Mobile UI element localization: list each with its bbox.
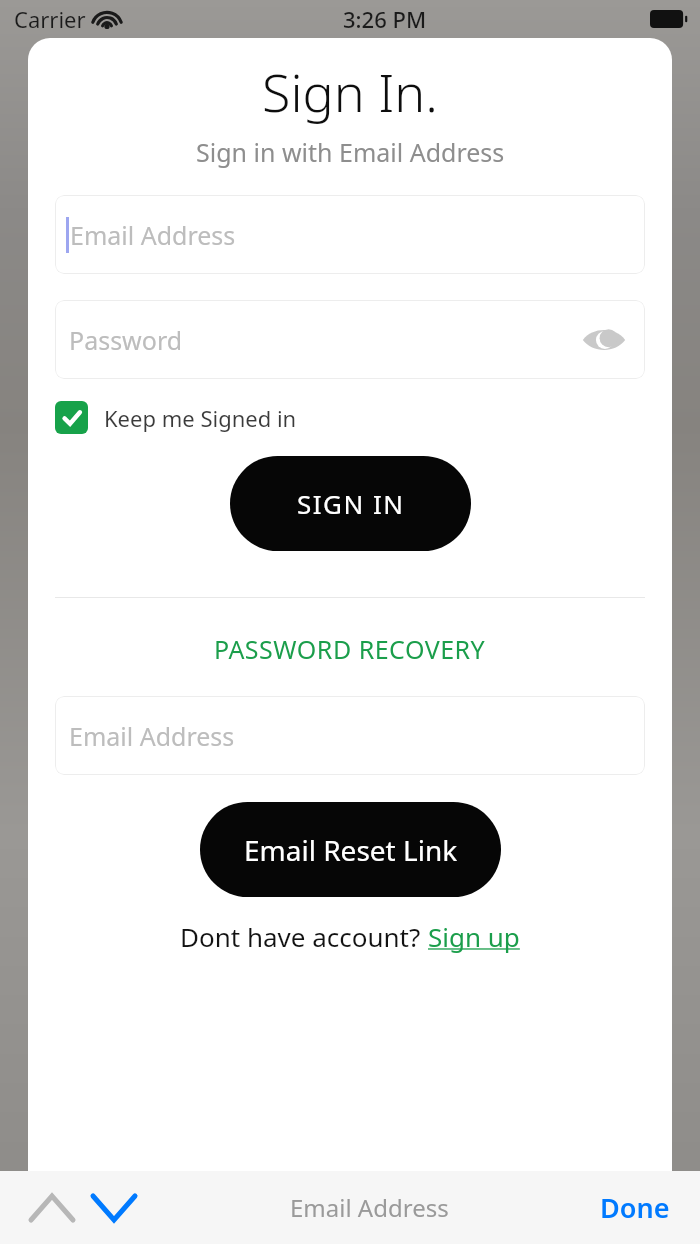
staticText: Email Address xyxy=(70,218,236,252)
staticText: 3:26 PM xyxy=(343,4,427,34)
staticText: Sign In. xyxy=(262,56,438,127)
button[interactable]: Email Reset Link xyxy=(200,802,501,897)
button[interactable]: Show password xyxy=(581,317,627,363)
staticText: Email Address xyxy=(69,719,235,753)
staticText: Keep me Signed in xyxy=(104,403,297,433)
button[interactable]: Done xyxy=(600,1189,670,1226)
button[interactable]: SIGN IN xyxy=(230,456,471,551)
staticText: Done xyxy=(600,1189,670,1226)
staticText: SIGN IN xyxy=(297,486,405,521)
staticText: Carrier xyxy=(14,4,86,34)
staticText: Dont have account? xyxy=(180,919,428,954)
staticText: Sign up xyxy=(428,919,520,954)
button[interactable]: Previous field xyxy=(26,1182,78,1234)
staticText: Email Reset Link xyxy=(244,831,458,869)
button[interactable]: Keep me Signed in xyxy=(55,401,645,434)
staticText: Password xyxy=(69,323,183,357)
staticText: PASSWORD RECOVERY xyxy=(214,632,486,666)
button[interactable]: Sign up xyxy=(428,919,520,954)
staticText: Email Address xyxy=(290,1191,449,1224)
button[interactable]: Email Address xyxy=(55,696,645,775)
button[interactable]: Password xyxy=(55,300,645,379)
staticText: Sign in with Email Address xyxy=(196,135,505,169)
button[interactable]: Next field xyxy=(88,1182,140,1234)
button[interactable]: Email Address xyxy=(55,195,645,274)
